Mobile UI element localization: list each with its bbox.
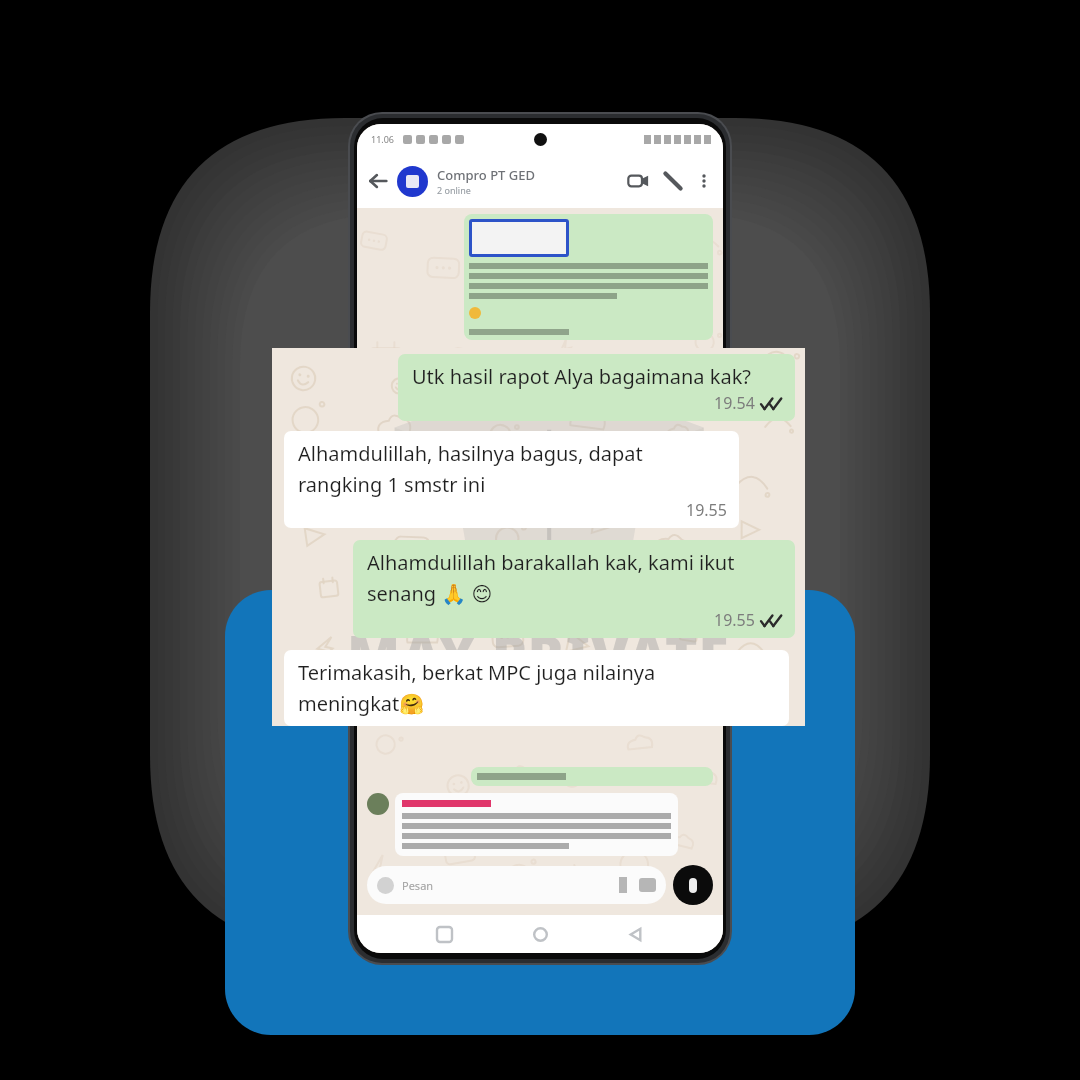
button[interactable]: More options: [695, 172, 713, 190]
staticText: Utk hasil rapot Alya bagaimana kak?: [412, 363, 752, 390]
staticText: Compro PT GED: [437, 166, 535, 184]
button[interactable]: Video call: [627, 170, 649, 192]
staticText: MAY PRIVATE: [347, 616, 730, 691]
button[interactable]: Back: [628, 927, 643, 942]
button[interactable]: Voice message: [673, 865, 713, 905]
button[interactable]: Pesan: [367, 866, 666, 904]
staticText: 19.55: [714, 609, 755, 631]
staticText: Alhamdulillah barakallah kak, kami ikut …: [367, 549, 735, 607]
staticText: 11.06: [371, 133, 395, 145]
staticText: 2 online: [437, 184, 471, 196]
button[interactable]: Back: [367, 170, 389, 192]
staticText: Pesan: [402, 878, 434, 893]
button[interactable]: Home: [533, 927, 548, 942]
button[interactable]: Call: [663, 171, 683, 191]
button[interactable]: Recents: [437, 927, 452, 942]
button[interactable]: Utk hasil rapot Alya bagaimana kak?: [398, 354, 795, 421]
staticText: Alhamdulillah, hasilnya bagus, dapat ran…: [298, 440, 643, 497]
staticText: 19.54: [714, 392, 755, 414]
button[interactable]: Terimakasih, berkat MPC juga nilainya me…: [284, 650, 789, 726]
staticText: Terimakasih, berkat MPC juga nilainya me…: [298, 659, 656, 717]
staticText: 19.55: [686, 499, 727, 521]
button[interactable]: Alhamdulillah barakallah kak, kami ikut …: [353, 540, 795, 638]
button[interactable]: Alhamdulillah, hasilnya bagus, dapat ran…: [284, 431, 739, 528]
